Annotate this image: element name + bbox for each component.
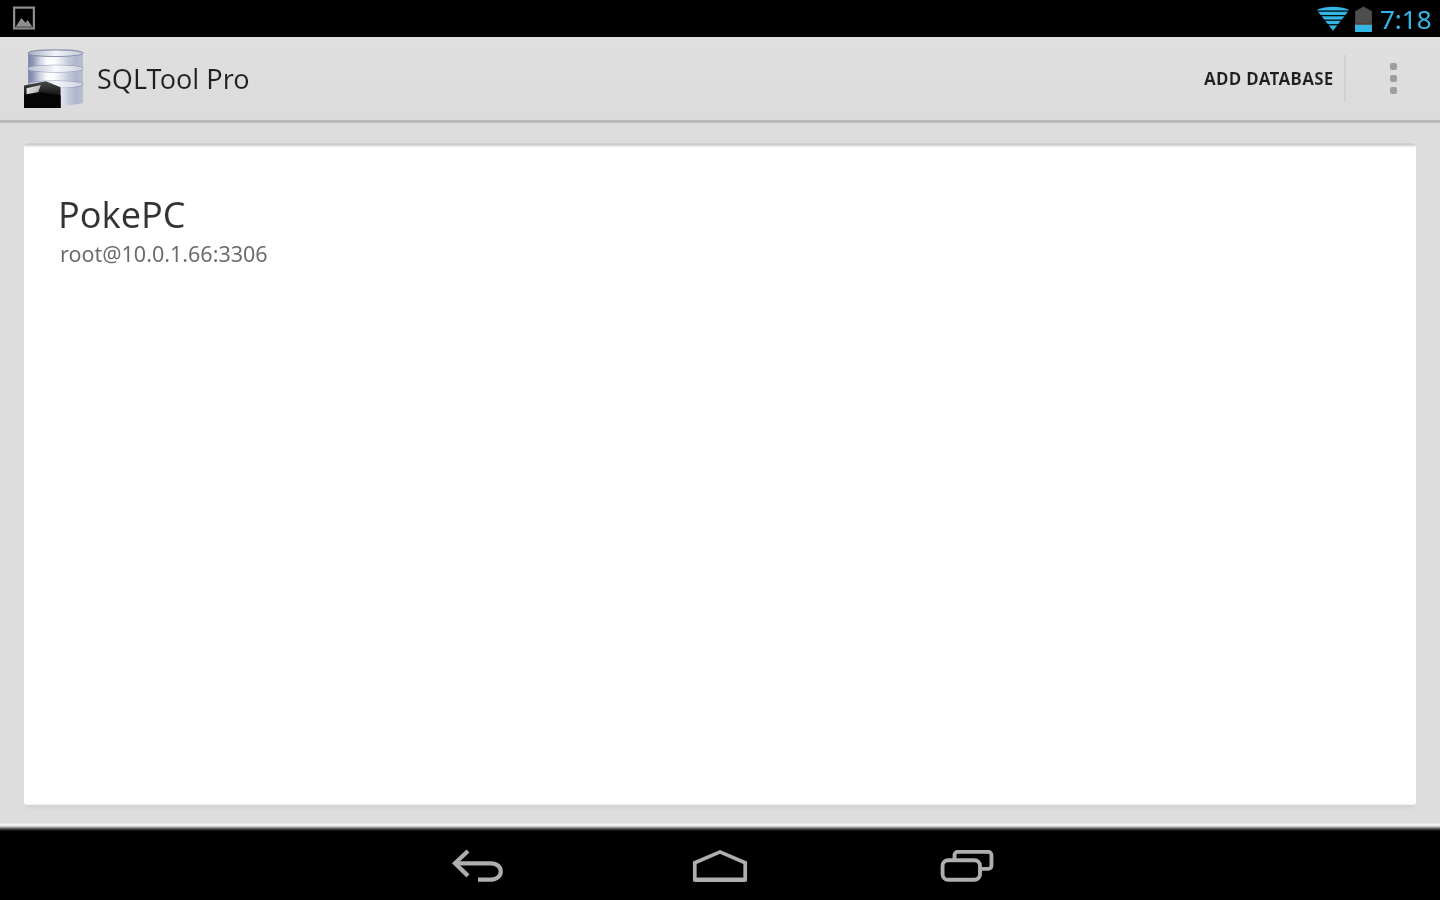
button[interactable]: ADD DATABASE (1184, 37, 1344, 120)
button[interactable]: Recent apps (919, 835, 1015, 896)
button[interactable]: PokePC (24, 143, 1416, 805)
staticText: PokePC (58, 190, 186, 239)
button[interactable]: More options (1346, 37, 1440, 120)
button[interactable]: Back (430, 835, 526, 896)
button[interactable]: Home (672, 835, 768, 896)
button[interactable]: SQLTool Pro (0, 37, 250, 120)
staticText: ADD DATABASE (1204, 67, 1334, 90)
staticText: 7:18 (1380, 1, 1432, 36)
staticText: root@10.0.1.66:3306 (60, 239, 268, 268)
staticText: SQLTool Pro (97, 60, 250, 97)
